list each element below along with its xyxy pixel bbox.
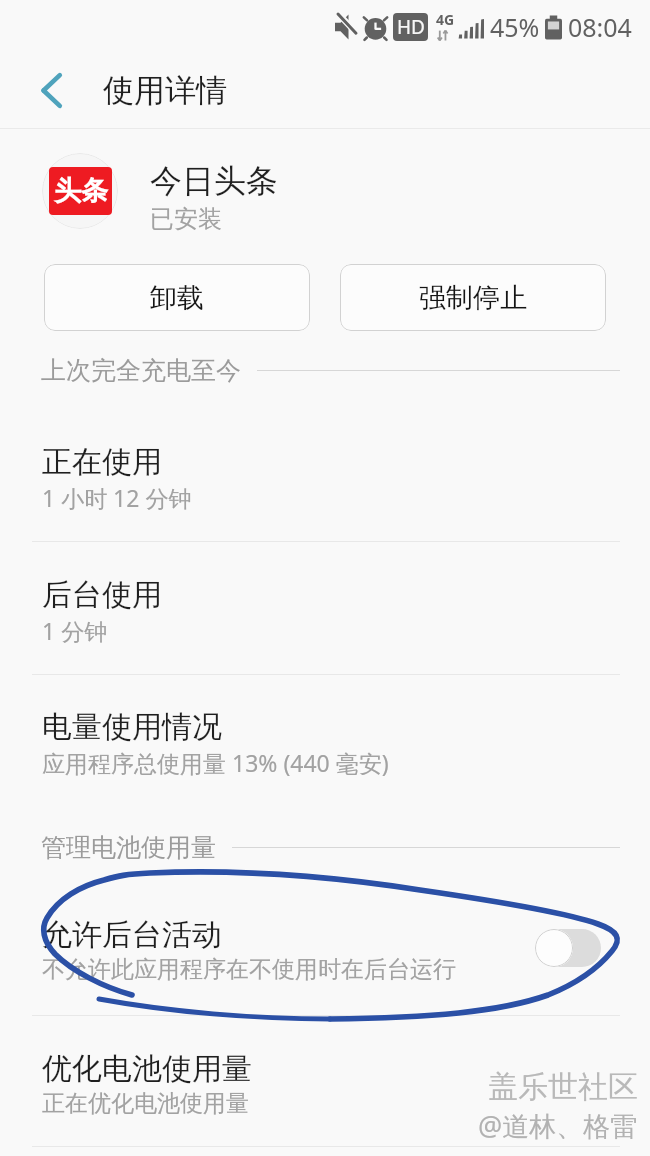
button[interactable]: 允许后台活动 [0,913,650,1013]
staticText: 后台使用 [42,576,162,614]
staticText: 应用程序总使用量 13% (440 毫安) [42,747,389,778]
staticText: 允许后台活动 [42,916,222,954]
staticText: 1 小时 12 分钟 [42,482,192,513]
button[interactable]: Back [0,52,92,128]
staticText: 08:04 [568,10,632,44]
button[interactable]: Allow background activity toggle [535,929,601,967]
staticText: 45% [490,10,540,44]
staticText: HD [397,14,425,40]
button[interactable]: 强制停止 [340,264,606,331]
staticText: 优化电池使用量 [42,1050,252,1088]
staticText: 使用详情 [103,71,227,110]
button[interactable]: 电量使用情况 [0,705,650,805]
staticText: 4G [436,10,455,29]
button[interactable]: 优化电池使用量 [0,1047,650,1147]
staticText: 不允许此应用程序在不使用时在后台运行 [42,955,456,984]
staticText: 已安装 [150,204,222,234]
staticText: 强制停止 [419,281,527,315]
staticText: 盖乐世社区 [488,1068,638,1106]
staticText: 上次完全充电至今 [41,355,241,385]
button[interactable]: 卸载 [44,264,310,331]
staticText: 今日头条 [150,161,278,201]
button[interactable]: 后台使用 [0,573,650,673]
staticText: 管理电池使用量 [41,832,216,862]
staticText: 1 分钟 [42,615,108,646]
staticText: 电量使用情况 [42,708,222,746]
button[interactable]: 正在使用 [0,440,650,540]
staticText: 正在使用 [42,443,162,481]
staticText: @道林、格雷 [478,1107,638,1144]
staticText: 正在优化电池使用量 [42,1089,249,1118]
staticText: 头条 [54,174,108,208]
staticText: 卸载 [150,281,204,315]
